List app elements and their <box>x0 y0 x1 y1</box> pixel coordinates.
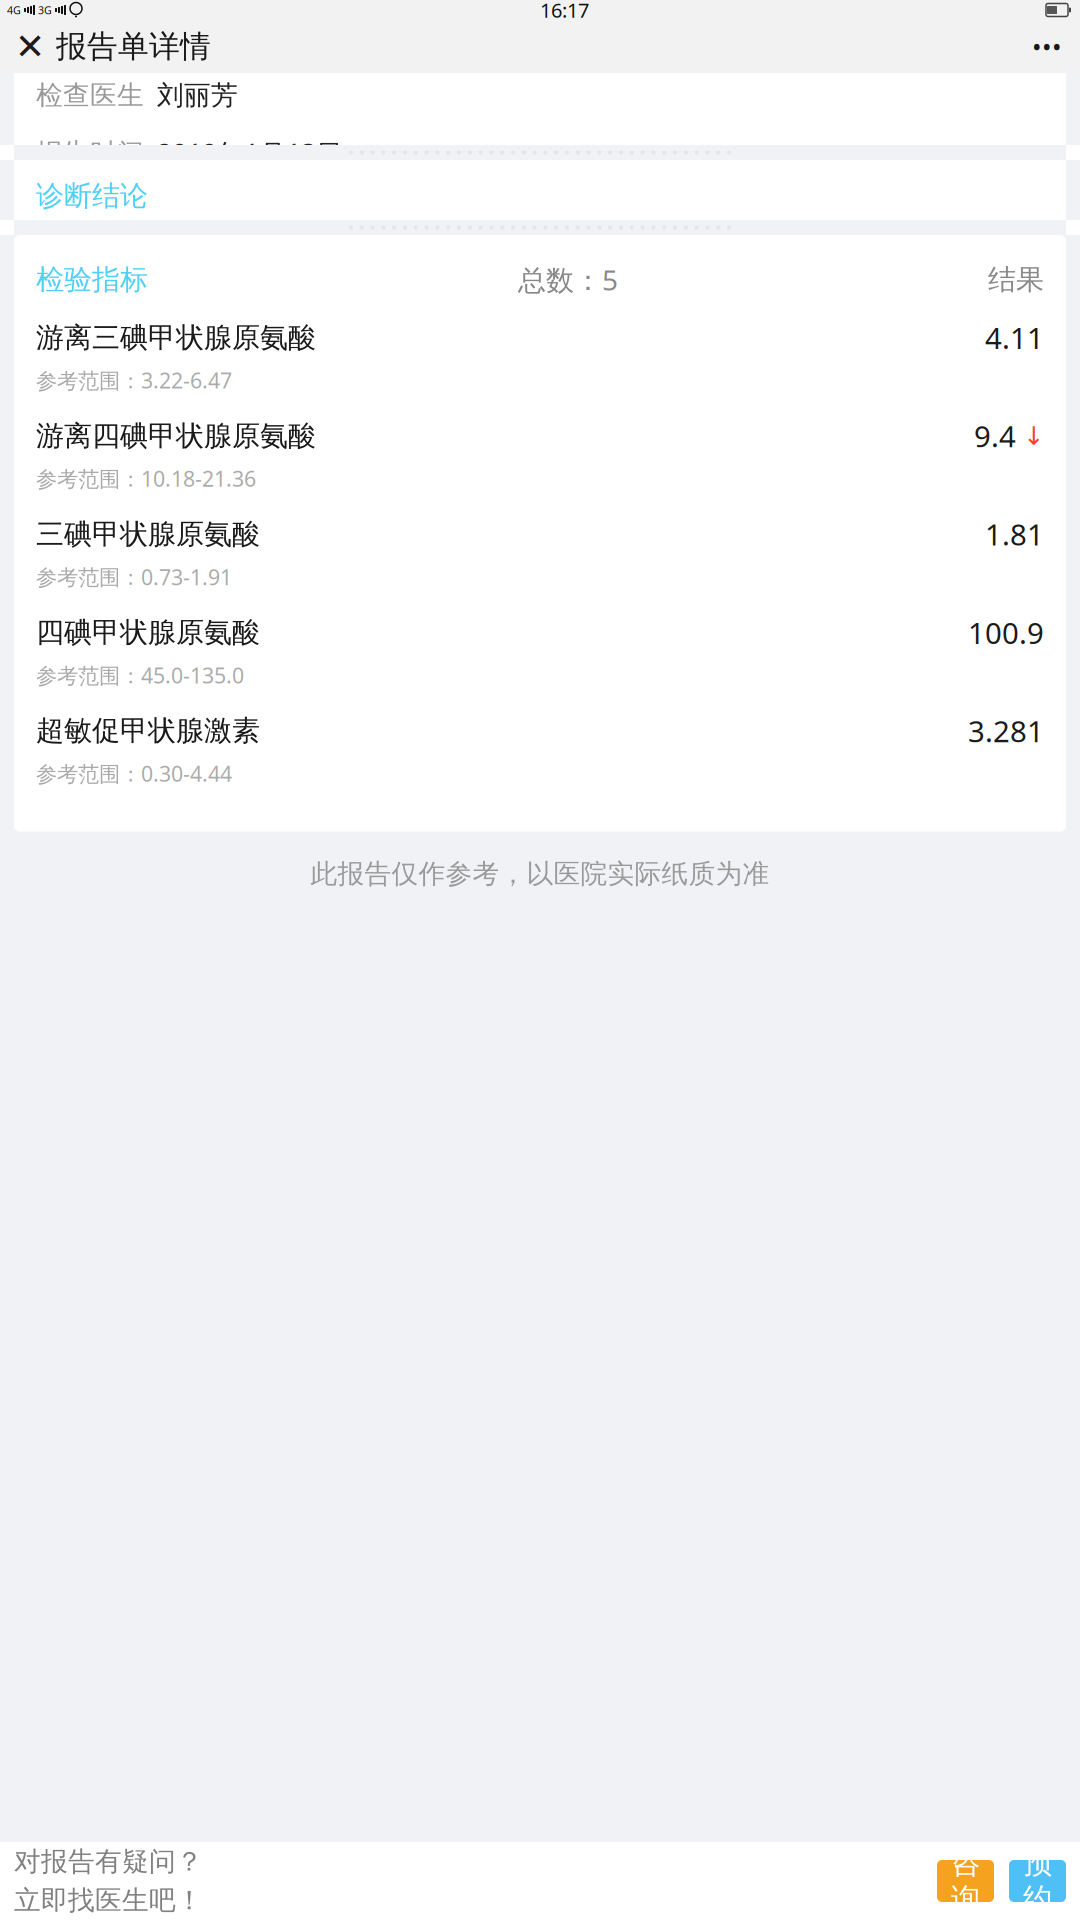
staticText: 检查医生 <box>36 79 144 112</box>
staticText: 16:17 <box>540 0 589 23</box>
staticText: 就诊人 <box>36 33 117 66</box>
staticText: 参考范围：45.0-135.0 <box>36 661 244 689</box>
staticText: 四碘甲状腺原氨酸 <box>36 615 260 650</box>
staticText: ✕ <box>15 26 45 67</box>
staticText: 超敏促甲状腺激素 <box>36 714 260 748</box>
staticText: 参考范围：3.22-6.47 <box>36 366 232 394</box>
staticText: 9.4 <box>974 416 1016 455</box>
staticText: 诊断结论 <box>36 179 148 213</box>
staticText: 刘丽芳 <box>157 79 238 112</box>
staticText: 4.11 <box>985 318 1044 357</box>
staticText: 3G <box>38 3 52 17</box>
staticText: 预约 <box>1023 1845 1052 1917</box>
staticText: 三碘甲状腺原氨酸 <box>36 517 260 551</box>
staticText: 游离三碘甲状腺原氨酸 <box>36 320 316 355</box>
staticText: 自己就诊人姓名 <box>130 33 319 66</box>
button[interactable]: 关闭 <box>4 24 56 68</box>
staticText: ↓ <box>1023 422 1044 450</box>
button[interactable]: 预约 <box>1009 1860 1066 1902</box>
staticText: 参考范围：0.73-1.91 <box>36 563 232 591</box>
staticText: 100.9 <box>968 613 1044 652</box>
staticText: 4G <box>7 3 21 17</box>
button[interactable]: 更多 <box>1020 24 1074 68</box>
staticText: 此报告仅作参考，以医院实际纸质为准 <box>310 858 769 890</box>
button[interactable]: 咨询 <box>937 1860 994 1902</box>
staticText: 结果 <box>988 262 1044 297</box>
staticText: 3.281 <box>968 711 1044 750</box>
staticText: ••• <box>1032 30 1062 63</box>
staticText: 咨询 <box>951 1845 980 1917</box>
staticText: 对报告有疑问？ <box>14 1845 203 1878</box>
staticText: 1.81 <box>985 515 1044 554</box>
staticText: 游离四碘甲状腺原氨酸 <box>36 419 316 453</box>
staticText: 参考范围：0.30-4.44 <box>36 759 232 788</box>
staticText: 参考范围：10.18-21.36 <box>36 464 256 493</box>
staticText: 立即找医生吧！ <box>14 1884 203 1917</box>
staticText: 报告单详情 <box>56 28 211 65</box>
staticText: 总数：5 <box>518 261 618 298</box>
staticText: 检验指标 <box>36 262 148 297</box>
staticText: 2019年1月13日 <box>157 136 343 171</box>
staticText: 报告时间 <box>36 137 144 170</box>
